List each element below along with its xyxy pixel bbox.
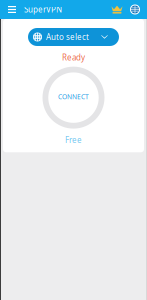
staticText: CONNECT bbox=[58, 92, 89, 101]
staticText: Free bbox=[65, 135, 82, 145]
button[interactable]: Change region bbox=[126, 0, 144, 19]
staticText: SuperVPN bbox=[24, 4, 62, 15]
staticText: Ready bbox=[62, 52, 85, 63]
button[interactable]: CONNECT bbox=[42, 67, 104, 129]
button[interactable]: Premium bbox=[108, 0, 126, 19]
button[interactable]: Auto select bbox=[28, 28, 119, 46]
button[interactable]: Menu bbox=[3, 0, 21, 19]
staticText: Auto select bbox=[46, 32, 89, 42]
